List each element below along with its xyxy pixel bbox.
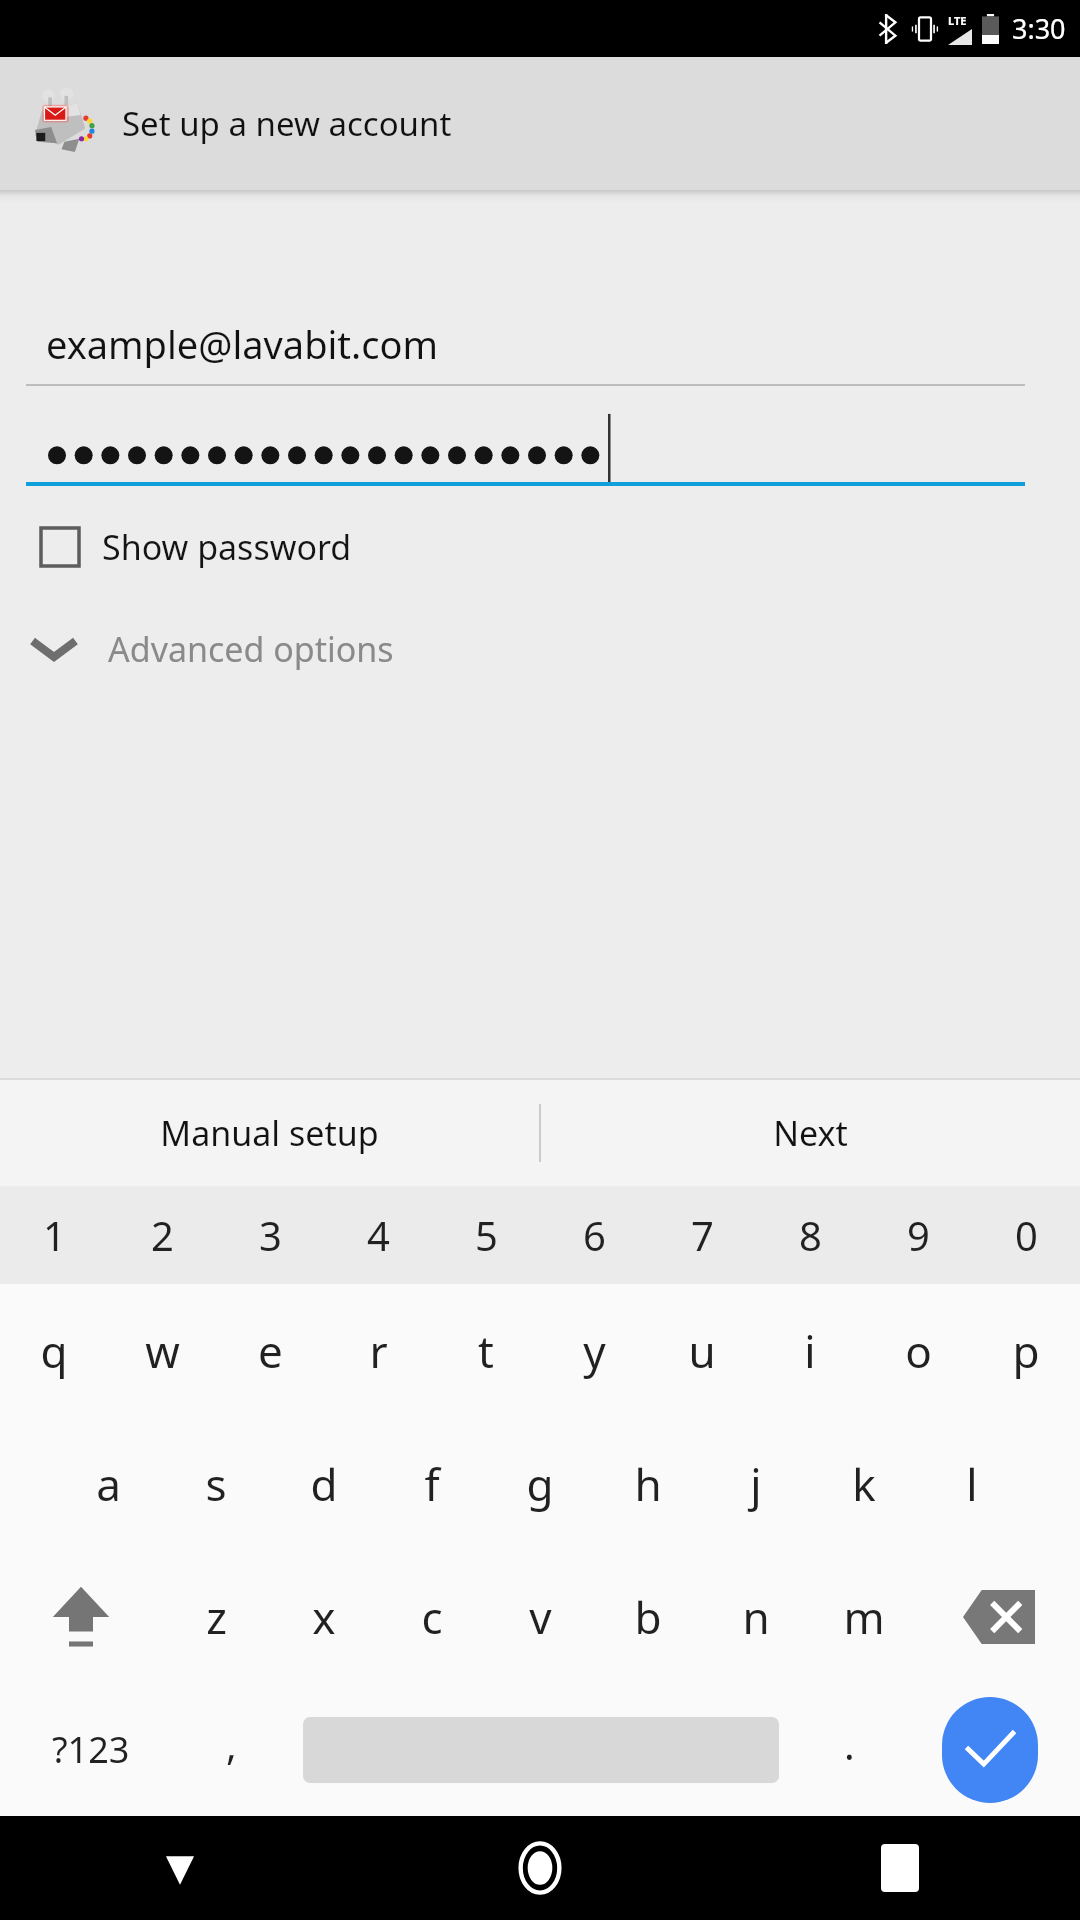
- staticText: t: [478, 1321, 494, 1381]
- button[interactable]: m: [810, 1550, 918, 1683]
- staticText: Set up a new account: [122, 101, 452, 146]
- button[interactable]: y: [540, 1284, 648, 1417]
- staticText: 2: [151, 1208, 174, 1262]
- button[interactable]: a: [54, 1417, 162, 1550]
- staticText: k: [852, 1454, 876, 1514]
- staticText: r: [369, 1321, 388, 1381]
- button[interactable]: 7: [648, 1186, 756, 1284]
- button[interactable]: z: [162, 1550, 270, 1683]
- staticText: a: [96, 1454, 121, 1514]
- staticText: q: [40, 1321, 68, 1381]
- button[interactable]: l: [918, 1417, 1026, 1550]
- staticText: Show password: [102, 524, 352, 570]
- button[interactable]: q: [0, 1284, 108, 1417]
- staticText: 5: [475, 1208, 498, 1262]
- staticText: 4: [367, 1208, 390, 1262]
- staticText: l: [966, 1454, 978, 1514]
- staticText: p: [1012, 1321, 1040, 1381]
- staticText: ,: [226, 1717, 237, 1771]
- button[interactable]: v: [486, 1550, 594, 1683]
- staticText: h: [634, 1454, 662, 1514]
- staticText: z: [206, 1587, 227, 1647]
- button[interactable]: ,: [181, 1683, 282, 1816]
- button[interactable]: s: [162, 1417, 270, 1550]
- button[interactable]: u: [648, 1284, 756, 1417]
- button[interactable]: d: [270, 1417, 378, 1550]
- button[interactable]: f: [378, 1417, 486, 1550]
- button[interactable]: 3: [216, 1186, 324, 1284]
- staticText: f: [424, 1454, 440, 1514]
- staticText: 3: [259, 1208, 282, 1262]
- button[interactable]: i: [756, 1284, 864, 1417]
- staticText: 6: [583, 1208, 606, 1262]
- staticText: 3:30: [1012, 10, 1066, 47]
- button[interactable]: 2: [108, 1186, 216, 1284]
- staticText: Next: [773, 1110, 848, 1156]
- button[interactable]: 5: [432, 1186, 540, 1284]
- button[interactable]: c: [378, 1550, 486, 1683]
- button[interactable]: j: [702, 1417, 810, 1550]
- staticText: b: [634, 1587, 662, 1647]
- staticText: v: [529, 1587, 552, 1647]
- staticText: s: [205, 1454, 227, 1514]
- button[interactable]: h: [594, 1417, 702, 1550]
- button[interactable]: g: [486, 1417, 594, 1550]
- button[interactable]: 8: [756, 1186, 864, 1284]
- staticText: .: [844, 1717, 855, 1771]
- staticText: c: [421, 1587, 443, 1647]
- button[interactable]: Home: [360, 1816, 720, 1920]
- staticText: g: [526, 1454, 554, 1514]
- staticText: i: [804, 1321, 816, 1381]
- button[interactable]: k: [810, 1417, 918, 1550]
- button[interactable]: w: [108, 1284, 216, 1417]
- button[interactable]: x: [270, 1550, 378, 1683]
- button[interactable]: p: [972, 1284, 1080, 1417]
- button[interactable]: Advanced options: [0, 618, 1080, 680]
- button[interactable]: o: [864, 1284, 972, 1417]
- staticText: example@lavabit.com: [46, 318, 438, 370]
- staticText: Manual setup: [160, 1110, 379, 1156]
- button[interactable]: r: [324, 1284, 432, 1417]
- staticText: 9: [907, 1208, 930, 1262]
- button[interactable]: e: [216, 1284, 324, 1417]
- button[interactable]: Back: [0, 1816, 360, 1920]
- button[interactable]: Next: [541, 1080, 1080, 1186]
- staticText: u: [688, 1321, 716, 1381]
- button[interactable]: Backspace: [918, 1550, 1080, 1683]
- button[interactable]: Enter: [900, 1683, 1080, 1816]
- button[interactable]: Show password: [0, 514, 1080, 580]
- staticText: j: [750, 1454, 762, 1514]
- staticText: m: [843, 1587, 885, 1647]
- staticText: o: [905, 1321, 932, 1381]
- button[interactable]: Manual setup: [0, 1080, 539, 1186]
- button[interactable]: Recents: [720, 1816, 1080, 1920]
- button[interactable]: 4: [324, 1186, 432, 1284]
- button[interactable]: 6: [540, 1186, 648, 1284]
- button[interactable]: [282, 1683, 799, 1816]
- staticText: x: [312, 1587, 336, 1647]
- staticText: Advanced options: [108, 626, 394, 672]
- staticText: 8: [799, 1208, 822, 1262]
- button[interactable]: 1: [0, 1186, 108, 1284]
- button[interactable]: .: [799, 1683, 900, 1816]
- staticText: ?123: [52, 1725, 130, 1774]
- button[interactable]: b: [594, 1550, 702, 1683]
- staticText: n: [742, 1587, 770, 1647]
- staticText: LTE: [948, 13, 967, 28]
- staticText: e: [258, 1321, 283, 1381]
- button[interactable]: 9: [864, 1186, 972, 1284]
- staticText: 0: [1015, 1208, 1038, 1262]
- staticText: w: [145, 1321, 180, 1381]
- staticText: 1: [43, 1208, 66, 1262]
- staticText: y: [583, 1321, 606, 1381]
- staticText: d: [310, 1454, 338, 1514]
- button[interactable]: 0: [972, 1186, 1080, 1284]
- button[interactable]: ?123: [0, 1683, 181, 1816]
- staticText: 7: [691, 1208, 714, 1262]
- button[interactable]: n: [702, 1550, 810, 1683]
- button[interactable]: t: [432, 1284, 540, 1417]
- button[interactable]: Shift: [0, 1550, 162, 1683]
